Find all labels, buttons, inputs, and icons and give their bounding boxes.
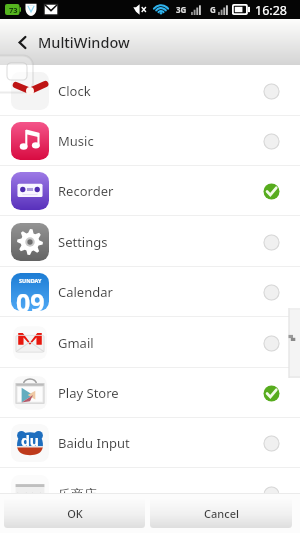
staticText: 乐商店	[58, 486, 97, 502]
staticText: Music	[58, 132, 94, 150]
staticText: MultiWindow	[38, 32, 130, 52]
staticText: Recorder	[58, 182, 114, 200]
staticText: Cancel	[204, 506, 239, 521]
button[interactable]: Settings	[0, 217, 300, 267]
button[interactable]: Music	[0, 116, 300, 166]
button[interactable]: du	[0, 418, 300, 468]
button[interactable]: SUNDAY	[0, 267, 300, 317]
button[interactable]: Play Store	[0, 368, 300, 418]
staticText: 73	[9, 5, 18, 15]
staticText: OK	[67, 506, 83, 521]
staticText: Gmail	[58, 334, 94, 352]
button[interactable]: OK	[4, 498, 145, 528]
staticText: G	[210, 4, 216, 15]
staticText: Play Store	[58, 384, 119, 402]
staticText: Settings	[58, 233, 108, 251]
staticText: Calendar	[58, 283, 113, 301]
button[interactable]: Recorder	[0, 166, 300, 216]
staticText: du	[21, 431, 39, 450]
button[interactable]: Clock	[0, 66, 300, 116]
staticText: Clock	[58, 82, 91, 100]
button[interactable]: Cancel	[150, 498, 292, 528]
button[interactable]: 乐商店	[0, 469, 300, 519]
staticText: 3G	[176, 4, 187, 15]
staticText: 09	[16, 285, 45, 311]
staticText: 16:28	[255, 2, 287, 19]
button[interactable]: Back	[0, 19, 38, 65]
button[interactable]: Gmail	[0, 318, 300, 368]
staticText: Baidu Input	[58, 434, 130, 452]
staticText: SUNDAY	[19, 277, 42, 284]
